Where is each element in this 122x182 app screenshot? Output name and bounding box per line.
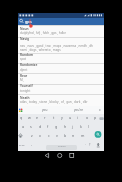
staticText: gps [25, 19, 32, 24]
staticText: Random [20, 53, 33, 57]
staticText: j [72, 124, 73, 129]
staticText: v [56, 133, 58, 138]
button[interactable] [43, 152, 51, 160]
staticText: o [86, 115, 89, 120]
staticText: Yourself [20, 84, 33, 88]
staticText: f [47, 124, 49, 129]
staticText: , [31, 142, 32, 146]
staticText: Neath [20, 96, 30, 100]
staticText: nami , dogs , whereto , mags [20, 48, 61, 52]
staticText: spot [20, 57, 27, 61]
staticText: t [53, 115, 55, 120]
staticText: p [94, 115, 97, 120]
staticText: z [31, 133, 33, 138]
staticText: you're [74, 108, 83, 112]
staticText: djent [20, 68, 28, 72]
button[interactable] [46, 145, 77, 150]
staticText: n [72, 133, 75, 138]
staticText: you [42, 108, 48, 112]
staticText: m [81, 133, 85, 138]
staticText: l [88, 124, 89, 129]
staticText: h [64, 124, 67, 129]
staticText: . [85, 142, 86, 146]
staticText: M, [20, 78, 24, 82]
staticText: nav , navs , gpsd , trac , maps , navams… [20, 44, 93, 48]
staticText: q [20, 115, 23, 120]
staticText: b [64, 133, 67, 138]
button[interactable] [68, 152, 76, 160]
staticText: Randomize [20, 63, 38, 67]
staticText: i [77, 115, 78, 120]
staticText: Noun [20, 27, 29, 31]
staticText: English [58, 145, 66, 148]
staticText: dutjdyfnd , fvfj , fvbh , gps , hdke [20, 31, 66, 35]
staticText: k [80, 124, 82, 129]
button[interactable] [36, 107, 60, 113]
button[interactable] [95, 131, 102, 138]
staticText: g [55, 124, 58, 129]
staticText: y [61, 115, 63, 120]
staticText: s [30, 124, 32, 129]
staticText: e [36, 115, 39, 120]
staticText: ? [89, 143, 91, 147]
staticText: a [22, 124, 25, 129]
staticText: d [39, 124, 42, 129]
staticText: x [39, 133, 41, 138]
staticText: Navig [20, 37, 30, 41]
button[interactable] [98, 116, 104, 121]
staticText: c [48, 133, 50, 138]
button[interactable] [56, 152, 64, 160]
staticText: u [69, 115, 72, 120]
staticText: tonight [20, 89, 31, 93]
staticText: Rear [20, 74, 28, 78]
staticText: x [99, 108, 101, 112]
staticText: w [28, 115, 31, 120]
staticText: atlas , today , stone , blocky , of , gu… [20, 100, 88, 104]
staticText: r [44, 115, 46, 120]
